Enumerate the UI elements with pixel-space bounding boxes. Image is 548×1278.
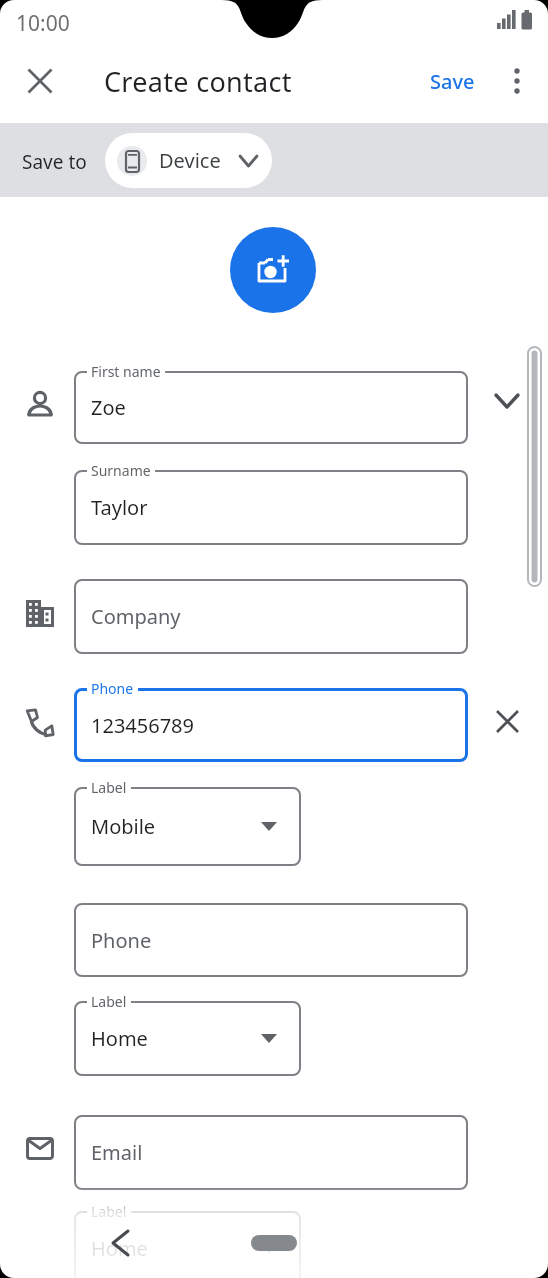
- staticText: Mobile: [91, 813, 156, 840]
- staticText: Label: [91, 992, 127, 1011]
- staticText: Device: [159, 147, 221, 174]
- staticText: Company: [91, 603, 181, 630]
- staticText: Surname: [91, 461, 151, 480]
- button[interactable]: Company: [74, 579, 468, 654]
- staticText: 10:00: [16, 9, 70, 38]
- button[interactable]: Mobile: [74, 787, 301, 866]
- staticText: Taylor: [91, 494, 148, 521]
- button[interactable]: Taylor: [74, 470, 468, 545]
- button[interactable]: [486, 700, 528, 742]
- staticText: Phone: [91, 927, 152, 954]
- button[interactable]: Email: [74, 1115, 468, 1190]
- button[interactable]: Home: [74, 1211, 301, 1278]
- button[interactable]: Home: [74, 1001, 301, 1076]
- button[interactable]: Device: [105, 133, 272, 188]
- staticText: Label: [91, 778, 127, 797]
- button[interactable]: [251, 1235, 297, 1251]
- staticText: Label: [91, 1202, 127, 1221]
- staticText: Home: [91, 1025, 148, 1052]
- staticText: Phone: [91, 679, 134, 698]
- button[interactable]: Zoe: [74, 371, 468, 444]
- staticText: Save to: [22, 149, 87, 175]
- staticText: Create contact: [104, 63, 292, 100]
- button[interactable]: Save: [424, 62, 480, 100]
- staticText: Zoe: [91, 394, 126, 421]
- button[interactable]: [230, 227, 316, 313]
- button[interactable]: [16, 57, 64, 105]
- button[interactable]: [486, 380, 528, 422]
- button[interactable]: [98, 1221, 142, 1265]
- staticText: 123456789: [91, 712, 194, 739]
- button[interactable]: [498, 62, 536, 100]
- button[interactable]: 123456789: [74, 688, 468, 762]
- staticText: First name: [91, 362, 161, 381]
- staticText: Save: [430, 68, 475, 95]
- staticText: Email: [91, 1139, 143, 1166]
- staticText: Home: [91, 1235, 148, 1262]
- button[interactable]: Phone: [74, 903, 468, 977]
